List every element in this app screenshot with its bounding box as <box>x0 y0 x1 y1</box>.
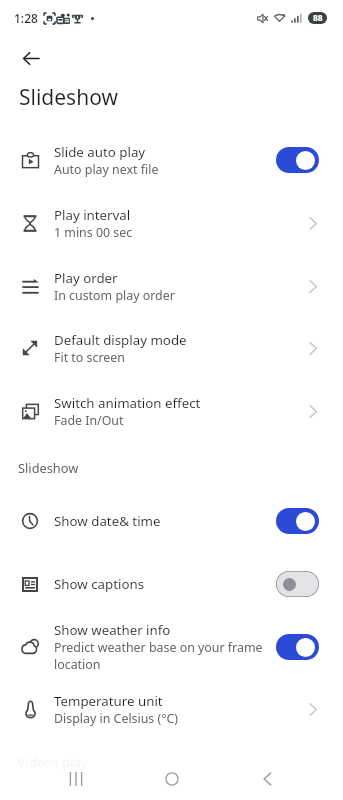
staticText: 1 mins 00 sec <box>54 224 133 241</box>
staticText: Play order <box>54 269 118 287</box>
staticText: Fit to screen <box>54 349 125 366</box>
staticText: Display in Celsius (°C) <box>54 710 179 727</box>
staticText: Auto play next file <box>54 161 159 178</box>
button[interactable]: Play interval <box>0 192 343 254</box>
button[interactable]: Switch animation effect <box>0 380 343 442</box>
staticText: Show weather info <box>54 621 171 639</box>
button[interactable]: Temperature unit <box>0 678 343 740</box>
staticText: Slideshow <box>18 459 79 476</box>
staticText: 88 <box>313 12 323 24</box>
staticText: Fade In/Out <box>54 412 124 429</box>
button[interactable]: Back <box>13 40 49 76</box>
button[interactable]: Home <box>152 760 192 797</box>
button[interactable]: Switch on <box>276 147 319 173</box>
staticText: In custom play order <box>54 287 175 304</box>
button[interactable]: Default display mode <box>0 317 343 379</box>
button[interactable]: Switch off <box>276 571 319 597</box>
staticText: Show captions <box>54 575 145 593</box>
button[interactable]: Back <box>247 760 287 797</box>
staticText: Slide auto play <box>54 143 146 161</box>
button[interactable]: Show captions <box>0 553 343 615</box>
staticText: Temperature unit <box>54 692 163 710</box>
button[interactable]: Show weather info <box>0 616 343 678</box>
staticText: Default display mode <box>54 331 187 349</box>
button[interactable]: Recent apps <box>56 760 96 797</box>
staticText: Play interval <box>54 206 131 224</box>
button[interactable]: Show date& time <box>0 490 343 552</box>
staticText: Show date& time <box>54 512 161 530</box>
staticText: Slideshow <box>19 83 118 112</box>
button[interactable]: Play order <box>0 255 343 317</box>
button[interactable]: Slide auto play <box>0 129 343 191</box>
staticText: Videos play <box>17 753 88 771</box>
button[interactable]: Switch on <box>276 508 319 534</box>
button[interactable]: Switch on <box>276 634 319 660</box>
staticText: Predict weather base on your frame locat… <box>54 639 269 673</box>
staticText: Switch animation effect <box>54 394 201 412</box>
staticText: 1:28 <box>14 10 38 26</box>
